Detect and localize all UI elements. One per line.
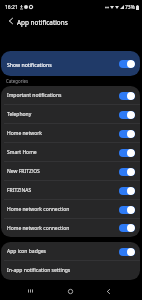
button[interactable]: Show notifications	[1, 51, 140, 76]
staticText: Home network	[7, 130, 117, 137]
button[interactable]: In-app notification settings	[1, 261, 140, 280]
staticText: New FRITZ!OS	[7, 168, 117, 175]
button[interactable]: Telephony	[1, 105, 140, 124]
button[interactable]: Smart Home	[1, 143, 140, 162]
button[interactable]: FRITZ!NAS	[1, 181, 140, 200]
staticText: Important notifications	[7, 92, 117, 99]
staticText: App icon badges	[7, 248, 117, 255]
button[interactable]: Important notifications	[1, 86, 140, 105]
staticText: Smart Home	[7, 149, 117, 156]
staticText: Categories	[6, 78, 29, 84]
button[interactable]: Home network connection	[1, 219, 140, 237]
staticText: FRITZ!NAS	[7, 187, 117, 194]
button[interactable]: Navigate up	[4, 16, 17, 29]
staticText: Home network connection	[7, 225, 117, 232]
staticText: Show notifications	[7, 61, 52, 68]
button[interactable]: Home network	[1, 124, 140, 143]
button[interactable]: New FRITZ!OS	[1, 162, 140, 181]
button[interactable]: Home network connection	[1, 200, 140, 219]
button[interactable]: Back	[99, 282, 117, 300]
staticText: 73%	[125, 4, 135, 11]
staticText: Home network connection	[7, 206, 117, 213]
button[interactable]: App icon badges	[1, 242, 140, 261]
button[interactable]: Home	[61, 282, 79, 300]
staticText: Telephony	[7, 111, 117, 118]
staticText: In-app notification settings	[7, 267, 135, 274]
staticText: App notifications	[17, 18, 68, 27]
staticText: 16:21	[5, 4, 18, 11]
button[interactable]: Recent apps	[21, 282, 39, 300]
